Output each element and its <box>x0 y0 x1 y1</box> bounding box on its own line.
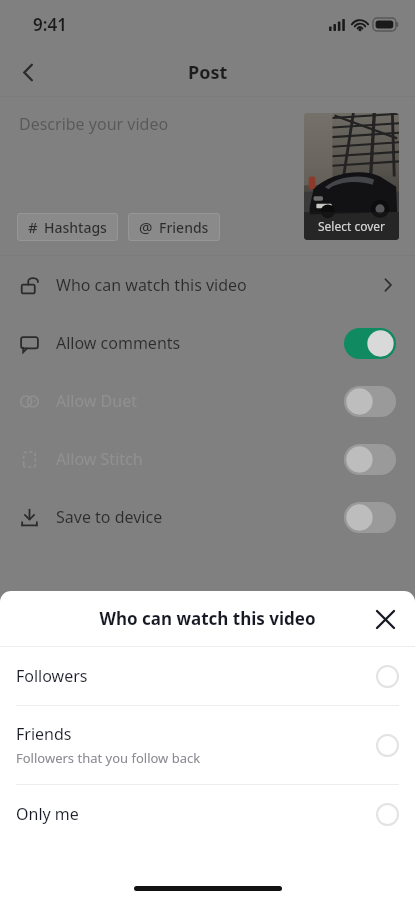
staticText: Who can watch this video <box>99 607 316 630</box>
button[interactable]: Who can watch this video <box>0 256 415 314</box>
button[interactable]: Back <box>6 50 50 94</box>
staticText: # <box>28 217 38 237</box>
staticText: Select cover <box>318 218 386 234</box>
staticText: Describe your video <box>19 113 169 135</box>
staticText: Hashtags <box>44 218 107 237</box>
staticText: Save to device <box>56 506 344 528</box>
staticText: Post <box>188 60 228 85</box>
staticText: Followers <box>16 665 88 687</box>
button[interactable]: Only me <box>0 785 415 843</box>
staticText: Who can watch this video <box>56 274 380 296</box>
button[interactable]: Select cover <box>304 113 399 240</box>
staticText: Only me <box>16 803 79 825</box>
staticText: 9:41 <box>33 13 67 36</box>
button[interactable]: Save to device <box>0 488 415 546</box>
button[interactable]: @ <box>128 213 220 241</box>
button[interactable]: Allow Stitch <box>0 430 415 488</box>
staticText: Allow Stitch <box>56 448 344 470</box>
staticText: Allow comments <box>56 332 344 354</box>
button[interactable]: Friends <box>0 706 415 784</box>
button[interactable]: # <box>17 213 118 241</box>
button[interactable]: Followers <box>0 647 415 705</box>
staticText: Followers that you follow back <box>16 749 201 767</box>
button[interactable]: Allow comments <box>0 314 415 372</box>
staticText: Friends <box>16 723 72 745</box>
staticText: Friends <box>159 218 209 237</box>
staticText: @ <box>139 217 153 237</box>
button[interactable]: Close <box>363 597 407 641</box>
button[interactable]: Allow Duet <box>0 372 415 430</box>
